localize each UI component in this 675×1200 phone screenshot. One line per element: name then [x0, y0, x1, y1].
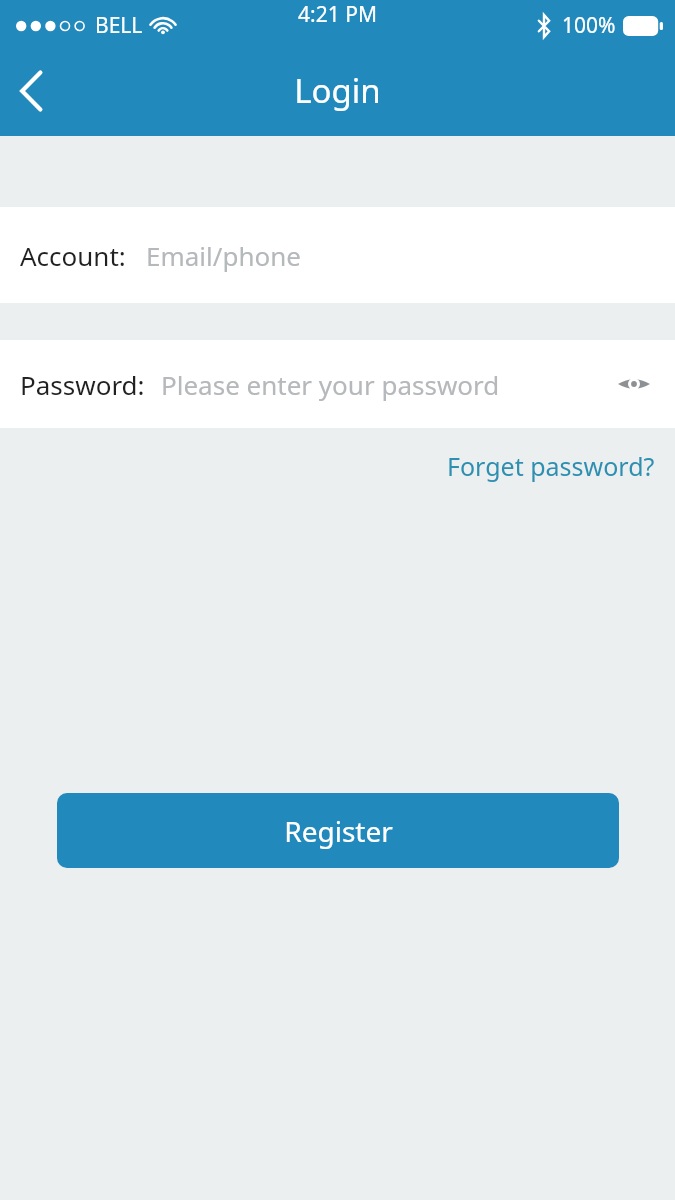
staticText: 100%	[562, 11, 616, 40]
button[interactable]: Account:	[0, 207, 675, 303]
staticText: Password:	[20, 367, 145, 402]
button[interactable]: Show password	[607, 357, 661, 411]
button[interactable]: Forget password?	[443, 443, 659, 489]
staticText: 4:21 PM	[298, 0, 377, 29]
staticText: Register	[284, 812, 393, 850]
staticText: Account:	[20, 238, 126, 273]
staticText: Please enter your password	[161, 367, 500, 402]
staticText: BELL	[95, 11, 143, 40]
staticText: Forget password?	[447, 449, 655, 483]
button[interactable]: Register	[57, 793, 619, 868]
button[interactable]: Password:	[0, 340, 675, 428]
staticText: Email/phone	[146, 238, 301, 273]
button[interactable]: Back	[0, 52, 64, 130]
staticText: Login	[294, 68, 381, 113]
